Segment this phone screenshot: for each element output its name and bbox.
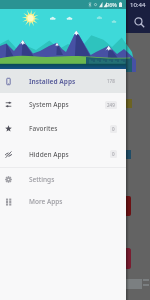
staticText: 96% — [106, 1, 117, 8]
staticText: System Apps — [29, 100, 69, 109]
button[interactable]: Search — [133, 16, 146, 29]
staticText: More Apps — [29, 197, 63, 206]
staticText: 0 — [112, 126, 115, 132]
button[interactable]: More Apps — [0, 191, 126, 211]
button[interactable]: Hidden Apps — [0, 141, 126, 167]
staticText: Settings — [29, 175, 55, 184]
staticText: Installed Apps — [29, 77, 76, 86]
button[interactable]: System Apps — [0, 93, 126, 116]
staticText: Hidden Apps — [29, 150, 69, 159]
button[interactable]: Settings — [0, 168, 126, 191]
staticText: 0 — [112, 151, 115, 157]
button[interactable]: Installed Apps — [0, 69, 126, 93]
button[interactable]: Favorites — [0, 116, 126, 141]
staticText: Favorites — [29, 124, 58, 133]
staticText: 178 — [107, 78, 115, 84]
staticText: 249 — [107, 102, 115, 108]
staticText: 10:44 — [130, 1, 146, 9]
